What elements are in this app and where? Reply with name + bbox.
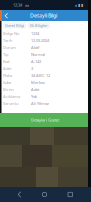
staticText: Plaka xyxy=(3,73,12,78)
staticText: Ek Bilgiler xyxy=(30,23,48,28)
button[interactable]: Back xyxy=(16,189,24,199)
button[interactable]: Back xyxy=(2,10,11,21)
button[interactable]: Detaylari Goster xyxy=(0,113,91,127)
staticText: Genel Bilgi xyxy=(5,23,24,28)
button[interactable]: Genel Bilgi xyxy=(3,22,26,28)
staticText: Normal xyxy=(31,52,45,57)
staticText: Tarih xyxy=(3,38,12,43)
staticText: Kod xyxy=(3,59,9,64)
button[interactable]: Home xyxy=(39,189,49,199)
staticText: Birim xyxy=(3,87,14,92)
staticText: 34 ABC 12 xyxy=(31,73,50,78)
staticText: Sorumlu xyxy=(3,101,18,106)
staticText: A-142 xyxy=(31,59,41,64)
staticText: Merkez xyxy=(31,80,45,85)
staticText: Detayli Bilgi xyxy=(30,12,57,19)
button[interactable]: Ek Bilgiler xyxy=(28,22,50,28)
staticText: Sube xyxy=(3,80,11,85)
staticText: Aciklama xyxy=(3,94,20,99)
staticText: Yok xyxy=(31,94,37,99)
staticText: ▴▴ xyxy=(25,3,29,7)
button[interactable]: Recent apps xyxy=(65,189,75,199)
staticText: Belge No xyxy=(3,31,19,36)
staticText: 12:34 xyxy=(13,2,22,8)
staticText: Adet xyxy=(31,87,39,92)
staticText: Tip xyxy=(3,52,8,57)
staticText: Aktif xyxy=(31,45,39,50)
staticText: Adet xyxy=(3,66,11,71)
staticText: Durum xyxy=(3,45,16,50)
staticText: ▴ ▮ ▮ xyxy=(75,3,83,7)
staticText: 3 xyxy=(31,66,33,71)
staticText: Detaylari Goster xyxy=(31,117,60,123)
staticText: 1234 xyxy=(31,31,39,36)
staticText: Ali Yilmaz xyxy=(31,101,49,106)
staticText: 12.03.2024 xyxy=(31,38,49,43)
